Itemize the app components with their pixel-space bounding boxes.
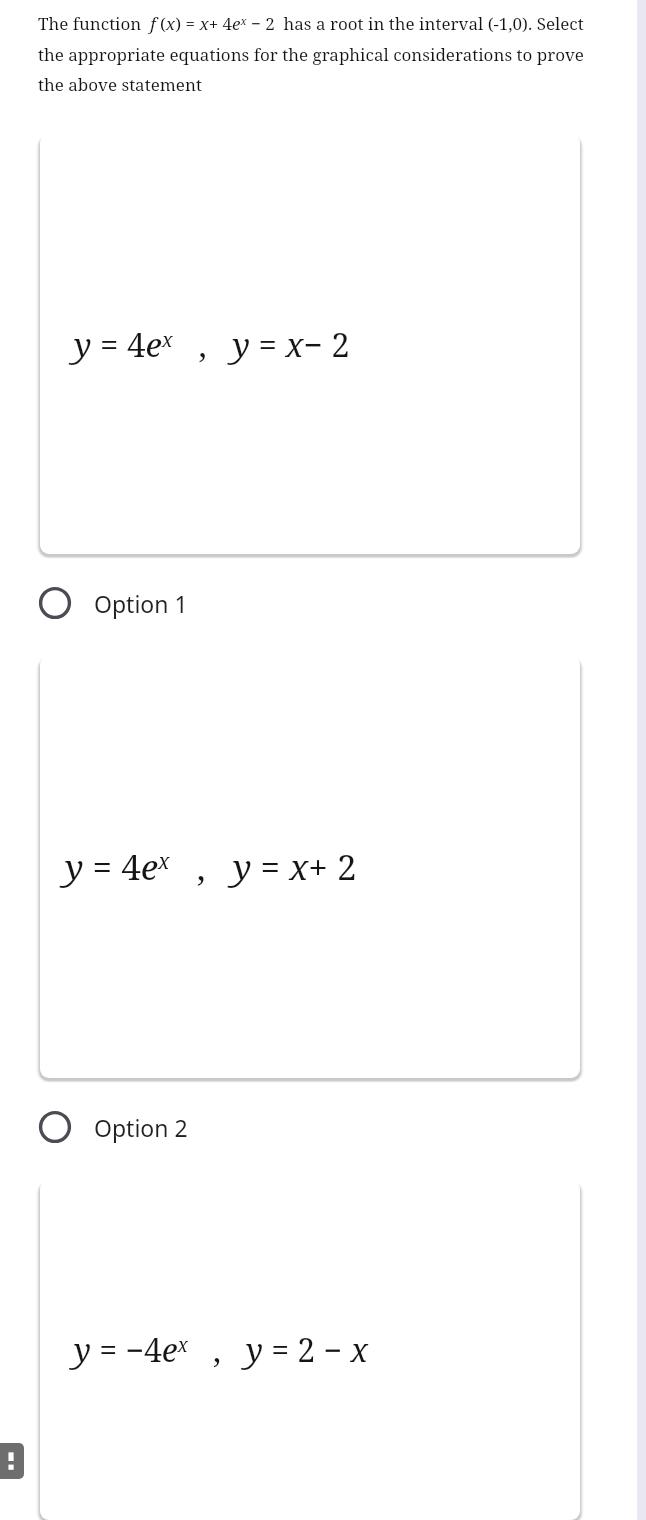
other: Select Option 2: [38, 1110, 72, 1144]
other: Select Option 1: [38, 586, 72, 620]
button[interactable]: Warning: [0, 1443, 24, 1479]
staticText: Option 2: [94, 1112, 188, 1143]
staticText: y = 4ex , y = x+ 2: [65, 843, 357, 891]
button[interactable]: y = 4ex , y = x− 2: [40, 134, 580, 554]
staticText: y = 4ex , y = x− 2: [74, 322, 350, 367]
button[interactable]: y = −4ex , y = 2 − x: [40, 1180, 580, 1520]
button[interactable]: Select Option 1: [0, 568, 646, 638]
staticText: Option 1: [94, 588, 188, 619]
button[interactable]: Select Option 2: [0, 1092, 646, 1162]
button[interactable]: y = 4ex , y = x+ 2: [40, 656, 580, 1078]
staticText: The function f (x) = x+ 4ex − 2 has a ro…: [38, 12, 602, 96]
staticText: y = −4ex , y = 2 − x: [74, 1328, 368, 1372]
